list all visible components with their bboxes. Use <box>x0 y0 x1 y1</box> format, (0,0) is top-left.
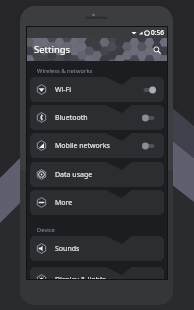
staticText: Device <box>37 226 55 234</box>
button[interactable]: Display & lights <box>30 267 164 279</box>
button[interactable]: More <box>30 190 164 215</box>
button[interactable]: Wi-Fi <box>30 77 164 102</box>
staticText: Wireless & networks <box>37 67 93 75</box>
staticText: Bluetooth <box>55 113 88 123</box>
staticText: Wi-Fi <box>55 85 72 95</box>
staticText: Mobile networks <box>55 141 110 151</box>
button[interactable]: Data usage <box>30 162 164 187</box>
staticText: Data usage <box>55 170 93 180</box>
staticText: 0:56 <box>151 28 164 37</box>
staticText: Display & lights <box>55 275 106 279</box>
staticText: Sounds <box>55 244 80 254</box>
button[interactable]: Bluetooth <box>30 105 164 130</box>
button[interactable]: Search <box>147 40 167 60</box>
staticText: More <box>55 198 73 208</box>
button[interactable]: Mobile networks <box>30 133 164 158</box>
button[interactable]: Sounds <box>30 236 164 261</box>
staticText: Settings <box>34 43 71 56</box>
